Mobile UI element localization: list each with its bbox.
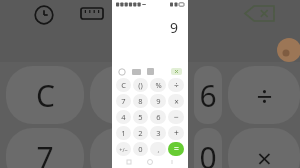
button[interactable]: Unit converter (81, 8, 103, 19)
staticText: − (174, 111, 179, 123)
staticText: + (174, 127, 179, 139)
button[interactable]: History (33, 4, 55, 26)
button[interactable]: 4 (116, 110, 131, 124)
button[interactable]: C (6, 66, 84, 124)
staticText: 7 (121, 96, 126, 106)
button[interactable]: 8 (90, 128, 168, 168)
staticText: ÷ (174, 79, 179, 91)
button[interactable]: × (228, 128, 300, 168)
button[interactable]: 7 (6, 128, 84, 168)
staticText: ÷ (256, 76, 273, 114)
staticText: % (155, 80, 162, 90)
staticText: × (257, 140, 272, 168)
button[interactable]: 6 (150, 110, 166, 124)
staticText: 0 (199, 137, 217, 168)
staticText: 7 (36, 137, 54, 168)
button[interactable]: 0 (133, 142, 148, 156)
staticText: 0 (138, 144, 143, 154)
button[interactable]: 9 (150, 94, 166, 108)
button[interactable]: 5 (133, 110, 148, 124)
staticText: × (174, 96, 179, 107)
button[interactable]: × (168, 94, 184, 108)
button[interactable]: − (168, 110, 184, 124)
staticText: 2 (138, 128, 143, 138)
staticText: 3 (156, 128, 161, 138)
button[interactable]: Home (145, 157, 155, 167)
button[interactable]: Converter (132, 69, 141, 75)
staticText: C (121, 80, 126, 90)
staticText: 6 (156, 112, 161, 122)
staticText: C (36, 75, 55, 116)
button[interactable]: Back (167, 157, 177, 167)
staticText: 5 (138, 112, 143, 122)
button[interactable]: Recents (124, 157, 134, 167)
button[interactable]: ÷ (228, 66, 300, 124)
staticText: 1 (121, 128, 126, 138)
button[interactable]: , (150, 142, 166, 156)
button[interactable]: = (168, 142, 184, 156)
staticText: 8 (138, 96, 143, 106)
button[interactable]: Backspace (171, 68, 182, 75)
button[interactable]: () (133, 78, 148, 92)
button[interactable]: +/− (116, 142, 131, 156)
button[interactable]: 7 (116, 94, 131, 108)
button[interactable]: Keypad (147, 68, 154, 75)
button[interactable]: C (116, 78, 131, 92)
staticText: +/− (119, 146, 128, 153)
button[interactable]: 8 (133, 94, 148, 108)
staticText: 6 (199, 75, 217, 116)
button[interactable]: 3 (150, 126, 166, 140)
button[interactable]: ( (90, 66, 168, 124)
staticText: 9 (156, 96, 161, 106)
button[interactable]: 6 (194, 66, 222, 124)
button[interactable]: ÷ (168, 78, 184, 92)
staticText: ( (125, 75, 134, 116)
button[interactable]: Backspace (245, 5, 275, 22)
button[interactable]: 2 (133, 126, 148, 140)
staticText: 4 (121, 112, 126, 122)
button[interactable]: History (118, 68, 126, 76)
button[interactable]: 0 (194, 128, 222, 168)
staticText: 9 (170, 18, 179, 37)
button[interactable]: 1 (116, 126, 131, 140)
button[interactable]: + (168, 126, 184, 140)
staticText: = (174, 143, 179, 155)
staticText: , (157, 144, 160, 154)
staticText: () (138, 80, 143, 90)
button[interactable]: % (150, 78, 166, 92)
staticText: 8 (120, 137, 138, 168)
